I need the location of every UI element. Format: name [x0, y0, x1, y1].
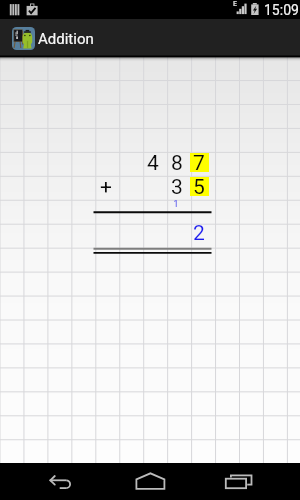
staticText: 1 [173, 198, 179, 209]
staticText: 4 [147, 151, 159, 176]
button[interactable]: Home [100, 463, 200, 500]
button[interactable]: Addition [0, 19, 300, 57]
staticText: + [100, 175, 112, 200]
staticText: 15:09 [264, 2, 299, 18]
staticText: 2 [193, 221, 205, 246]
button[interactable]: Recent apps [200, 463, 300, 500]
staticText: Addition [38, 30, 94, 48]
button[interactable]: Back [0, 463, 100, 500]
staticText: 5 [193, 175, 205, 200]
staticText: 7 [193, 151, 205, 176]
staticText: 3 [171, 175, 183, 200]
staticText: E [233, 0, 237, 8]
staticText: 8 [171, 151, 183, 176]
